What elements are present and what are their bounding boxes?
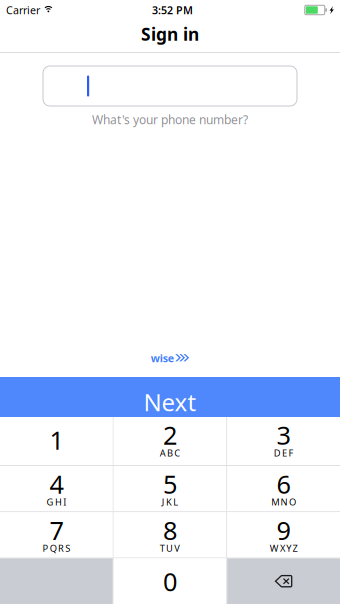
staticText: wise xyxy=(151,351,174,365)
button[interactable]: Next xyxy=(0,377,340,417)
staticText: 4 xyxy=(49,467,63,501)
button[interactable]: 3 xyxy=(227,417,340,465)
staticText: 0 xyxy=(163,565,177,598)
staticText: 7 xyxy=(49,513,63,547)
staticText: 2 xyxy=(163,418,177,452)
staticText: 9 xyxy=(277,513,291,547)
staticText: 1 xyxy=(49,423,63,457)
staticText: PQRS xyxy=(42,542,70,554)
staticText: GHI xyxy=(47,496,66,508)
button[interactable]: 7 xyxy=(0,512,113,558)
staticText: 3 xyxy=(277,418,291,452)
button[interactable]: 6 xyxy=(227,466,340,511)
staticText: 6 xyxy=(277,467,291,501)
staticText: 3:52 PM xyxy=(152,3,193,17)
button[interactable]: 9 xyxy=(227,512,340,558)
button[interactable]: 1 xyxy=(0,417,113,465)
staticText: Carrier xyxy=(6,3,40,17)
staticText: Next xyxy=(143,386,196,418)
staticText: TUV xyxy=(160,542,180,554)
staticText: MNO xyxy=(271,496,296,508)
button[interactable]: 4 xyxy=(0,466,113,511)
staticText: 5 xyxy=(163,467,177,501)
button[interactable]: 0 xyxy=(114,558,226,604)
staticText: WXYZ xyxy=(270,542,298,554)
staticText: DEF xyxy=(274,447,293,459)
button[interactable]: Delete xyxy=(227,558,340,604)
staticText: ABC xyxy=(160,447,180,459)
button[interactable]: 5 xyxy=(114,466,226,511)
staticText: What's your phone number? xyxy=(92,111,248,127)
button[interactable]: 2 xyxy=(114,417,226,465)
staticText: JKL xyxy=(162,496,178,508)
staticText: 8 xyxy=(163,513,177,547)
staticText: Sign in xyxy=(141,22,199,45)
button[interactable]: 8 xyxy=(114,512,226,558)
